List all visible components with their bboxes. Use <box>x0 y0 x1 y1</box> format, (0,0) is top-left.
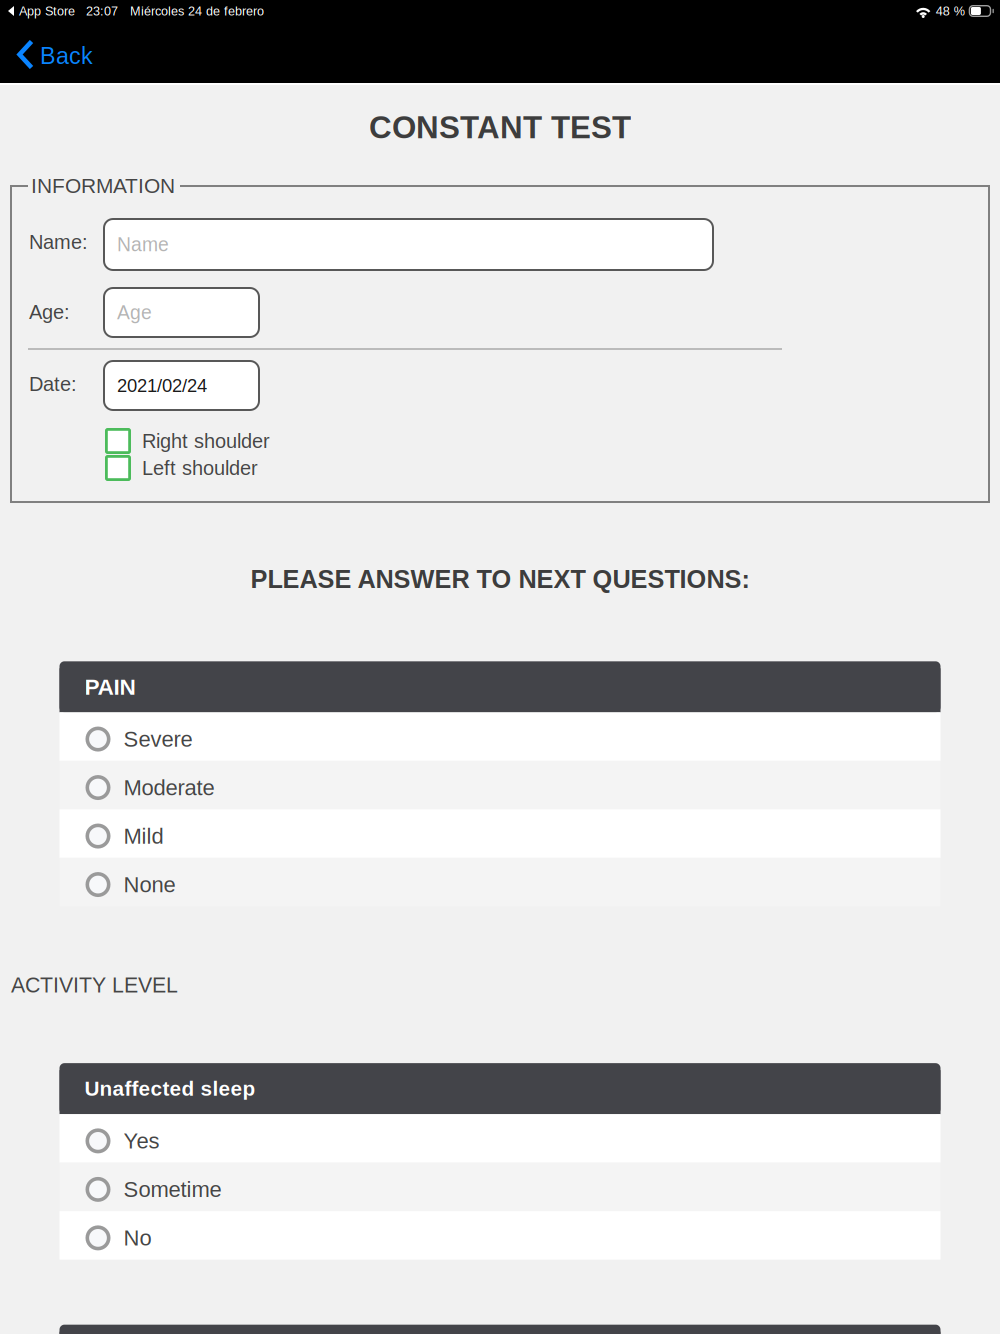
button[interactable]: None <box>59 858 940 906</box>
staticText: INFORMATION <box>31 174 175 197</box>
button[interactable]: Severe <box>59 712 940 761</box>
staticText: None <box>123 872 175 897</box>
button[interactable]: No <box>59 1211 940 1260</box>
staticText: 23:07 <box>86 4 118 18</box>
staticText: Yes <box>123 1129 159 1153</box>
button[interactable]: Right shoulder <box>105 427 365 455</box>
staticText: Left shoulder <box>142 457 258 479</box>
button[interactable]: Mild <box>59 809 940 858</box>
staticText: Miércoles 24 de febrero <box>130 4 264 18</box>
button[interactable]: Yes <box>59 1114 940 1163</box>
staticText: ACTIVITY LEVEL <box>11 973 178 997</box>
button[interactable]: Left shoulder <box>105 454 365 482</box>
staticText: Severe <box>123 727 192 751</box>
staticText: Mild <box>123 824 163 848</box>
staticText: Name <box>117 234 169 255</box>
button[interactable]: Back <box>0 22 105 83</box>
staticText: 48 % <box>936 4 965 18</box>
staticText: App Store <box>19 4 75 18</box>
button[interactable]: Name <box>104 219 713 270</box>
staticText: 2021/02/24 <box>117 375 207 396</box>
button[interactable]: Age <box>104 288 259 337</box>
button[interactable]: Moderate <box>59 761 940 809</box>
staticText: CONSTANT TEST <box>369 110 631 145</box>
button[interactable]: 2021/02/24 <box>104 361 259 410</box>
staticText: Sometime <box>123 1177 221 1202</box>
staticText: Right shoulder <box>142 430 270 452</box>
staticText: PAIN <box>84 674 135 699</box>
staticText: Age: <box>29 301 70 323</box>
staticText: Date: <box>29 373 77 395</box>
staticText: PLEASE ANSWER TO NEXT QUESTIONS: <box>250 565 749 593</box>
button[interactable]: Sometime <box>59 1163 940 1211</box>
staticText: Unaffected sleep <box>84 1077 255 1100</box>
staticText: Name: <box>29 231 88 253</box>
staticText: Moderate <box>123 775 214 800</box>
staticText: Back <box>40 43 93 69</box>
staticText: Age <box>117 302 152 323</box>
staticText: No <box>123 1226 151 1250</box>
